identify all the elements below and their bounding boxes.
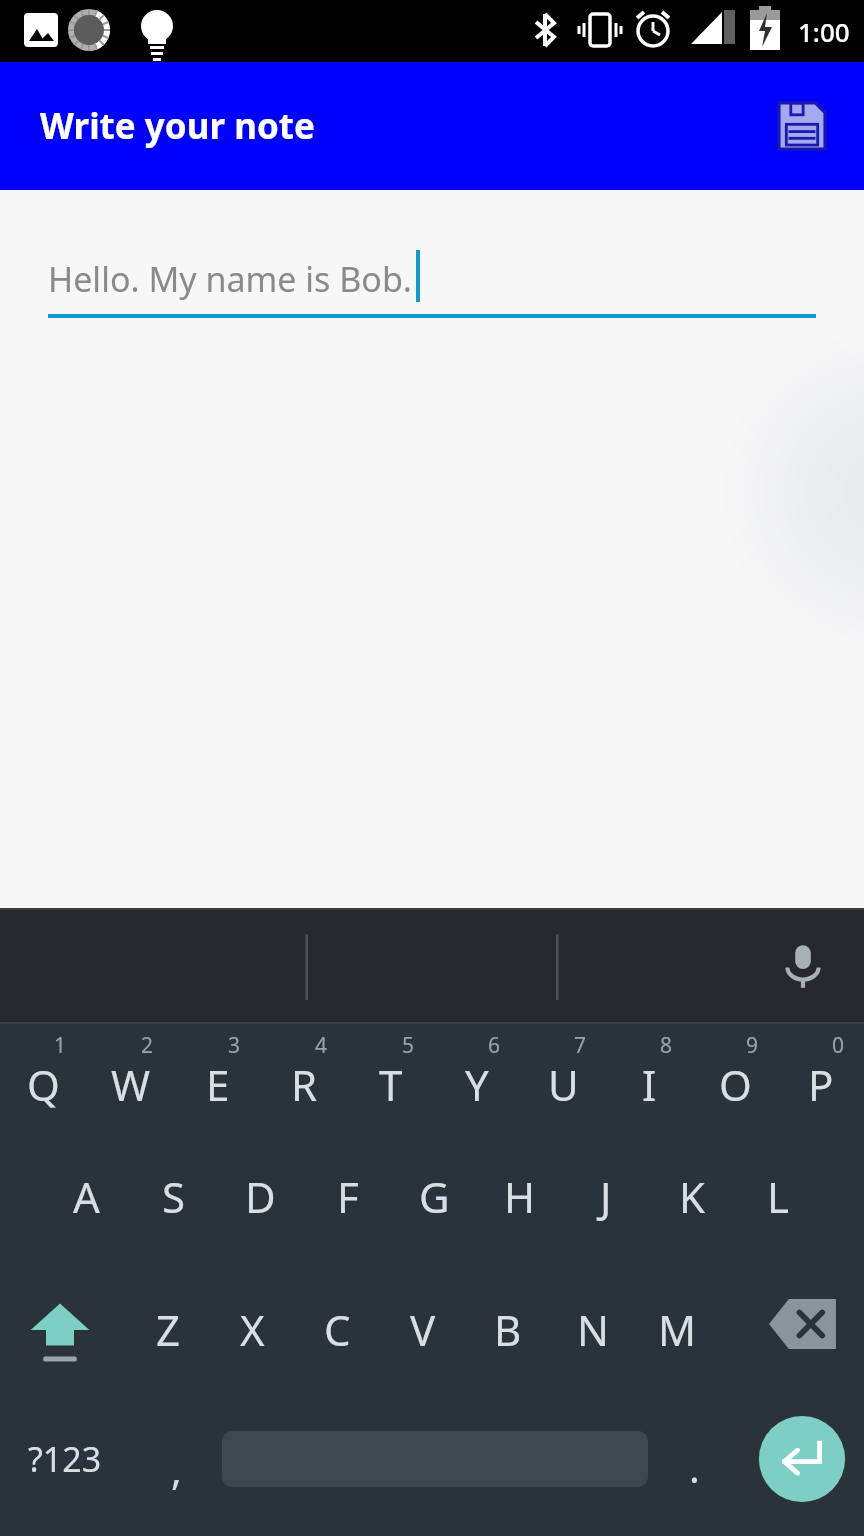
button[interactable]: Space: [222, 1396, 648, 1522]
staticText: V: [410, 1301, 436, 1358]
button[interactable]: 4: [261, 1023, 348, 1130]
button[interactable]: S: [130, 1130, 217, 1263]
button[interactable]: L: [735, 1130, 821, 1263]
staticText: X: [240, 1301, 265, 1358]
button[interactable]: Voice input: [764, 927, 842, 1005]
button[interactable]: .: [648, 1396, 740, 1522]
staticText: .: [689, 1440, 700, 1494]
button[interactable]: 3: [174, 1023, 261, 1130]
staticText: I: [642, 1056, 657, 1113]
staticText: R: [291, 1056, 318, 1113]
staticText: O: [719, 1056, 752, 1113]
button[interactable]: Shift: [0, 1263, 120, 1396]
staticText: J: [600, 1168, 612, 1225]
staticText: 3: [228, 1031, 241, 1060]
staticText: U: [548, 1056, 579, 1113]
staticText: 1:00: [798, 14, 850, 49]
button[interactable]: H: [477, 1130, 563, 1263]
button[interactable]: 5: [348, 1023, 434, 1130]
button[interactable]: J: [563, 1130, 649, 1263]
button[interactable]: F: [304, 1130, 391, 1263]
staticText: A: [73, 1168, 100, 1225]
button[interactable]: 0: [778, 1023, 864, 1130]
staticText: Y: [465, 1056, 489, 1113]
button[interactable]: Enter: [740, 1396, 864, 1522]
button[interactable]: ?123: [0, 1396, 130, 1522]
button[interactable]: G: [391, 1130, 477, 1263]
button[interactable]: 6: [434, 1023, 520, 1130]
staticText: H: [504, 1168, 536, 1225]
button[interactable]: A: [43, 1130, 130, 1263]
button[interactable]: C: [295, 1263, 380, 1396]
staticText: 0: [832, 1031, 845, 1060]
staticText: 7: [574, 1031, 587, 1060]
staticText: S: [162, 1168, 186, 1225]
staticText: Write your note: [40, 102, 315, 150]
button[interactable]: Save note: [766, 90, 838, 162]
button[interactable]: M: [635, 1263, 720, 1396]
staticText: 9: [746, 1031, 759, 1060]
button[interactable]: 2: [87, 1023, 174, 1130]
staticText: M: [658, 1301, 697, 1358]
staticText: L: [767, 1168, 790, 1225]
button[interactable]: N: [550, 1263, 635, 1396]
staticText: ?123: [28, 1436, 102, 1482]
button[interactable]: B: [465, 1263, 550, 1396]
staticText: Q: [27, 1056, 60, 1113]
staticText: 8: [660, 1031, 673, 1060]
button[interactable]: Z: [126, 1263, 210, 1396]
staticText: 6: [488, 1031, 501, 1060]
staticText: 1: [54, 1031, 67, 1060]
button[interactable]: V: [380, 1263, 465, 1396]
button[interactable]: Hello. My name is Bob.: [48, 250, 816, 318]
staticText: B: [494, 1301, 522, 1358]
button[interactable]: ,: [130, 1396, 222, 1522]
button[interactable]: 8: [606, 1023, 692, 1130]
staticText: 4: [315, 1031, 328, 1060]
staticText: T: [379, 1056, 403, 1113]
button[interactable]: K: [649, 1130, 735, 1263]
button[interactable]: 7: [520, 1023, 606, 1130]
staticText: C: [324, 1301, 351, 1358]
staticText: ,: [171, 1442, 182, 1496]
button[interactable]: X: [210, 1263, 295, 1396]
button[interactable]: Backspace: [744, 1263, 864, 1396]
staticText: F: [337, 1168, 359, 1225]
staticText: 2: [141, 1031, 154, 1060]
staticText: P: [808, 1056, 834, 1113]
staticText: Hello. My name is Bob.: [48, 256, 412, 302]
staticText: G: [419, 1168, 450, 1225]
staticText: Z: [156, 1301, 181, 1358]
button[interactable]: 9: [692, 1023, 778, 1130]
staticText: 5: [402, 1031, 415, 1060]
button[interactable]: D: [217, 1130, 304, 1263]
staticText: K: [679, 1168, 705, 1225]
staticText: W: [111, 1056, 151, 1113]
button[interactable]: 1: [0, 1023, 87, 1130]
staticText: N: [577, 1301, 609, 1358]
staticText: D: [245, 1168, 276, 1225]
staticText: E: [206, 1056, 230, 1113]
